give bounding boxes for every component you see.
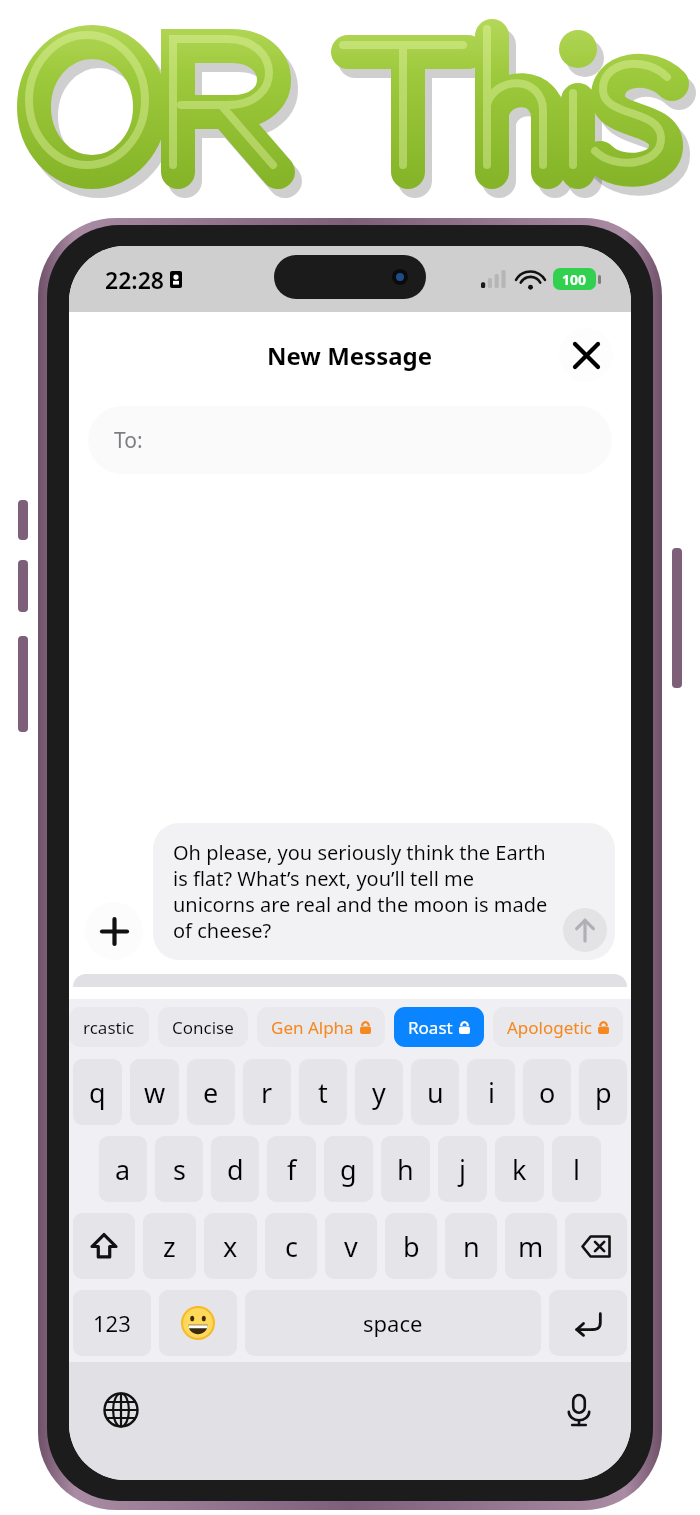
button[interactable]: q (73, 1059, 122, 1125)
button[interactable]: v (325, 1213, 377, 1279)
staticText: u (427, 1074, 444, 1111)
staticText: d (227, 1151, 244, 1188)
button[interactable]: s (155, 1136, 203, 1202)
staticText: v (344, 1228, 358, 1265)
button[interactable]: Oh please, you seriously think the Earth… (153, 823, 615, 960)
staticText: m (518, 1228, 544, 1265)
staticText: h (397, 1151, 414, 1188)
button[interactable]: a (99, 1136, 147, 1202)
button[interactable]: g (324, 1136, 373, 1202)
button[interactable]: k (495, 1136, 544, 1202)
button[interactable]: p (579, 1059, 627, 1125)
staticText: c (285, 1228, 298, 1265)
button[interactable]: Concise (158, 1007, 248, 1047)
staticText: r (261, 1074, 273, 1111)
staticText: q (89, 1074, 106, 1111)
button[interactable]: space (245, 1290, 541, 1356)
button[interactable]: Gen Alpha (257, 1007, 385, 1047)
staticText: To: (114, 426, 143, 455)
button[interactable]: j (438, 1136, 487, 1202)
button[interactable]: m (505, 1213, 557, 1279)
button[interactable]: u (411, 1059, 459, 1125)
button[interactable]: x (204, 1213, 257, 1279)
button[interactable]: Shift (73, 1213, 135, 1279)
button[interactable]: e (187, 1059, 235, 1125)
staticText: y (372, 1074, 386, 1111)
button[interactable]: To: (88, 406, 612, 474)
staticText: rcastic (83, 1016, 135, 1039)
button[interactable]: b (385, 1213, 437, 1279)
staticText: s (173, 1151, 186, 1188)
button[interactable]: Return (549, 1290, 627, 1356)
button[interactable]: i (467, 1059, 515, 1125)
staticText: f (287, 1151, 297, 1188)
button[interactable]: Emoji (159, 1290, 237, 1356)
button[interactable]: y (355, 1059, 403, 1125)
button[interactable]: c (265, 1213, 317, 1279)
staticText: w (144, 1074, 166, 1111)
button[interactable]: f (267, 1136, 316, 1202)
button[interactable]: Change keyboard language (95, 1384, 147, 1436)
button[interactable]: Add attachment (85, 902, 143, 960)
staticText: j (459, 1151, 466, 1188)
button[interactable]: n (445, 1213, 497, 1279)
button[interactable]: Apologetic (493, 1007, 623, 1047)
staticText: 22:28 (105, 264, 164, 295)
staticText: k (512, 1151, 527, 1188)
staticText: New Message (267, 339, 433, 372)
button[interactable]: Close (559, 328, 613, 382)
button[interactable]: d (211, 1136, 259, 1202)
staticText: Roast (408, 1016, 453, 1039)
button[interactable]: o (523, 1059, 571, 1125)
button[interactable]: Backspace (565, 1213, 627, 1279)
staticText: p (595, 1074, 612, 1111)
staticText: Concise (172, 1016, 234, 1039)
staticText: Oh please, you seriously think the Earth… (173, 839, 561, 944)
button[interactable]: t (299, 1059, 347, 1125)
button[interactable]: h (381, 1136, 430, 1202)
staticText: space (363, 1308, 423, 1338)
staticText: Gen Alpha (271, 1016, 354, 1039)
staticText: e (203, 1074, 219, 1111)
button[interactable]: z (143, 1213, 196, 1279)
button[interactable]: Voice input (553, 1384, 605, 1436)
staticText: z (163, 1228, 176, 1265)
staticText: 100 (562, 270, 587, 289)
button[interactable]: Roast (394, 1007, 484, 1047)
button[interactable]: Send (563, 908, 607, 952)
button[interactable]: r (243, 1059, 291, 1125)
button[interactable]: 123 (73, 1290, 151, 1356)
staticText: l (573, 1151, 580, 1188)
button[interactable]: w (130, 1059, 179, 1125)
staticText: n (463, 1228, 480, 1265)
staticText: t (318, 1074, 328, 1111)
staticText: Apologetic (507, 1016, 592, 1039)
staticText: a (115, 1151, 131, 1188)
staticText: 123 (93, 1308, 131, 1338)
button[interactable]: rcastic (69, 1007, 149, 1047)
button[interactable]: l (552, 1136, 601, 1202)
staticText: i (488, 1074, 495, 1111)
staticText: o (539, 1074, 556, 1111)
staticText: g (340, 1151, 357, 1188)
staticText: b (403, 1228, 420, 1265)
staticText: x (223, 1228, 238, 1265)
